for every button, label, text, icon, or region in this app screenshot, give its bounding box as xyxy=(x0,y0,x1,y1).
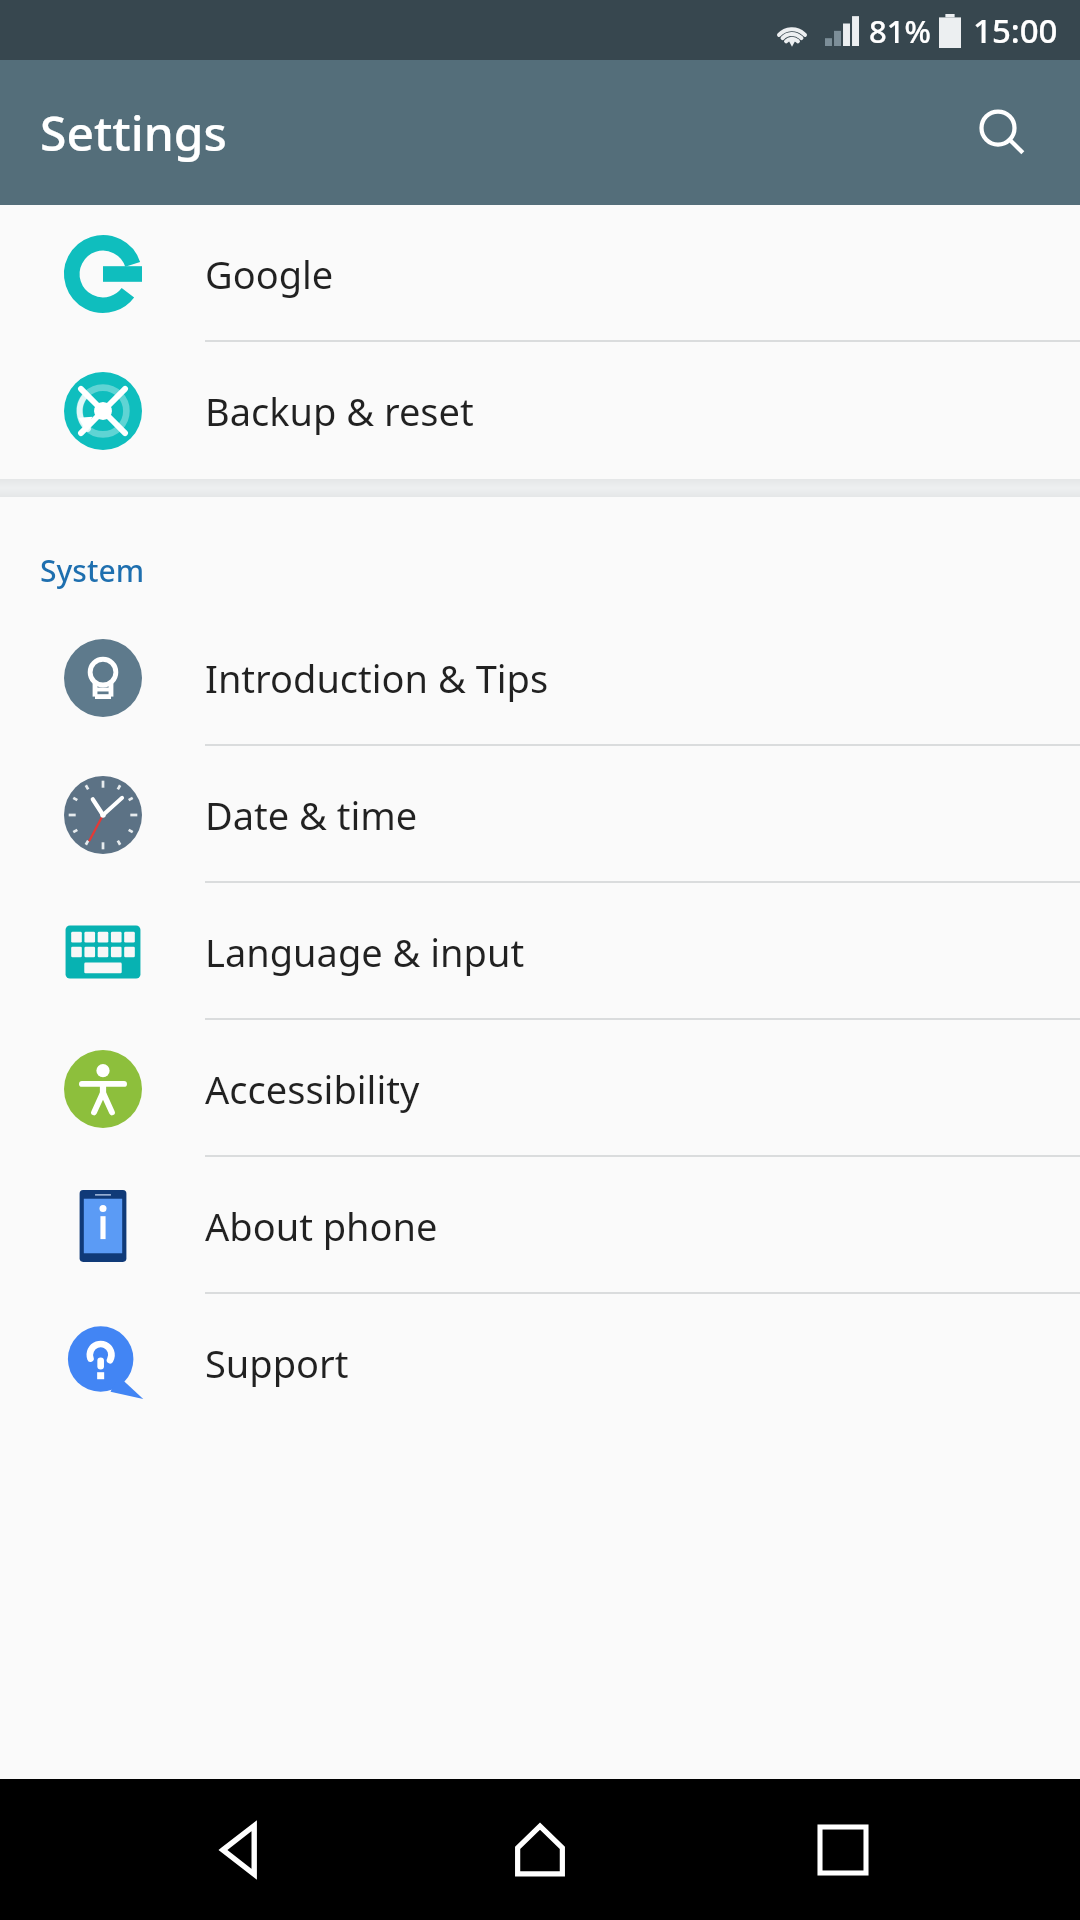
staticText: 81% xyxy=(869,10,931,52)
staticText: Google xyxy=(205,248,334,300)
button[interactable]: Back xyxy=(173,1785,303,1915)
staticText: About phone xyxy=(205,1200,438,1252)
button[interactable]: Date & time xyxy=(0,746,1080,883)
staticText: System xyxy=(40,550,145,591)
button[interactable]: Backup & reset xyxy=(0,342,1080,479)
staticText: Date & time xyxy=(205,789,418,841)
staticText: Backup & reset xyxy=(205,385,474,437)
staticText: Introduction & Tips xyxy=(205,652,549,704)
staticText: 15:00 xyxy=(973,8,1058,53)
staticText: Language & input xyxy=(205,926,525,978)
button[interactable]: About phone xyxy=(0,1157,1080,1294)
button[interactable]: Support xyxy=(0,1294,1080,1431)
button[interactable]: Home xyxy=(475,1785,605,1915)
button[interactable]: Introduction & Tips xyxy=(0,609,1080,746)
button[interactable]: Recent apps xyxy=(778,1785,908,1915)
button[interactable]: Accessibility xyxy=(0,1020,1080,1157)
button[interactable]: Language & input xyxy=(0,883,1080,1020)
staticText: Accessibility xyxy=(205,1063,420,1115)
staticText: Settings xyxy=(40,100,227,165)
staticText: Support xyxy=(205,1337,349,1389)
button[interactable]: Search xyxy=(954,85,1050,181)
button[interactable]: Google xyxy=(0,205,1080,342)
